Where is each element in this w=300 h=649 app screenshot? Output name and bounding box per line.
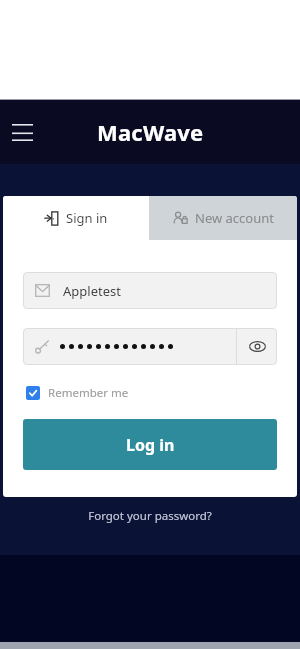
button[interactable]: Log in (23, 419, 277, 470)
staticText: Forgot your password? (88, 508, 212, 524)
staticText: Sign in (66, 209, 108, 227)
button[interactable]: Menu (6, 116, 38, 148)
staticText: Log in (126, 434, 175, 456)
staticText: MacWave (97, 117, 204, 147)
button[interactable]: Show password (237, 328, 277, 365)
staticText: New account (195, 209, 274, 227)
staticText: Appletest (63, 282, 121, 300)
button[interactable]: Forgot your password? (0, 508, 300, 524)
button[interactable]: Sign in (3, 196, 149, 240)
button[interactable]: New account (149, 196, 297, 240)
staticText: Remember me (48, 385, 129, 401)
button[interactable]: Appletest (23, 272, 277, 309)
button[interactable]: Remember me (26, 383, 129, 403)
